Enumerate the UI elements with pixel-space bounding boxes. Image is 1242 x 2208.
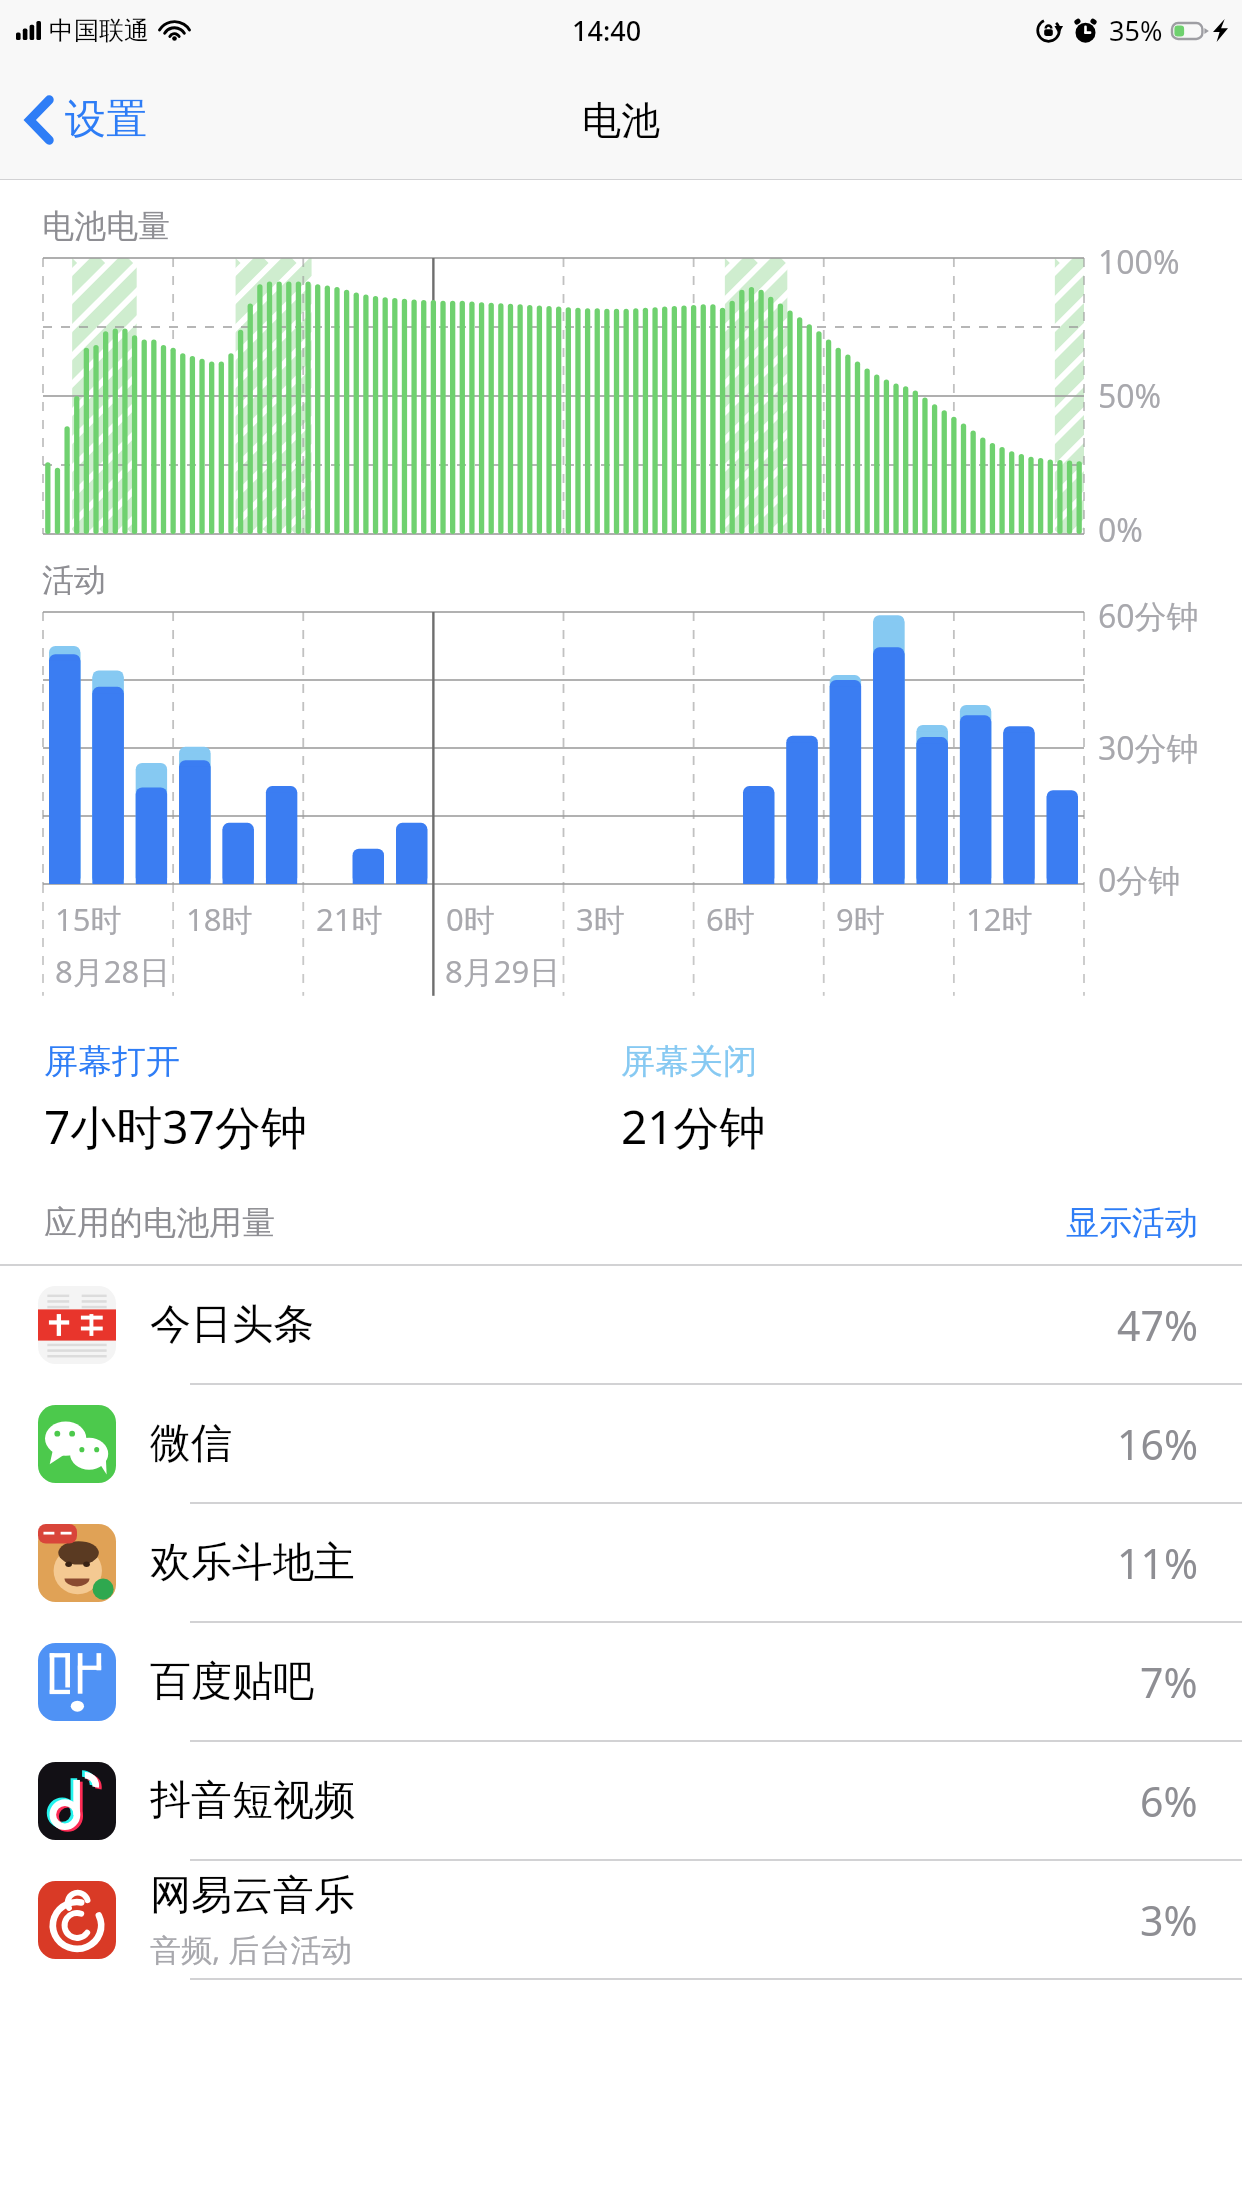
staticText: 0% (1098, 508, 1143, 552)
staticText: 微信 (150, 1418, 232, 1470)
staticText: 屏幕关闭 (621, 1040, 757, 1083)
staticText: 音频, 后台活动 (150, 1928, 353, 1970)
staticText: 18时 (186, 898, 253, 940)
staticText: 电池电量 (42, 206, 170, 246)
staticText: 应用的电池用量 (44, 1202, 275, 1244)
staticText: 今日头条 (150, 1299, 314, 1351)
button[interactable]: 百度贴吧 (0, 1623, 1242, 1740)
staticText: 30分钟 (1098, 726, 1199, 770)
staticText: 14:40 (572, 12, 642, 49)
other: 返回 (26, 96, 53, 144)
button[interactable]: 欢乐斗地主 (0, 1504, 1242, 1621)
staticText: 60分钟 (1098, 594, 1199, 638)
staticText: 中国联通 (49, 15, 149, 46)
staticText: 15时 (55, 898, 122, 940)
staticText: 显示活动 (1066, 1202, 1198, 1244)
staticText: 百度贴吧 (150, 1656, 314, 1708)
staticText: 16% (1117, 1416, 1198, 1472)
staticText: 3% (1140, 1892, 1198, 1948)
staticText: 47% (1117, 1297, 1198, 1353)
staticText: 8月28日 (55, 950, 171, 992)
staticText: 设置 (65, 94, 147, 146)
button[interactable]: 显示活动 (1066, 1202, 1198, 1244)
staticText: 7小时37分钟 (44, 1095, 307, 1158)
staticText: 12时 (966, 898, 1033, 940)
button[interactable]: 微信 (0, 1385, 1242, 1502)
staticText: 欢乐斗地主 (150, 1537, 355, 1589)
button[interactable]: 屏幕关闭 (621, 1040, 1198, 1158)
staticText: 网易云音乐 (150, 1870, 355, 1922)
staticText: 8月29日 (445, 950, 561, 992)
staticText: 35% (1109, 12, 1163, 49)
staticText: 电池 (582, 96, 660, 145)
staticText: 9时 (836, 898, 885, 940)
button[interactable]: 网易云音乐 (0, 1861, 1242, 1978)
button[interactable]: 今日头条 (0, 1266, 1242, 1383)
button[interactable]: 屏幕打开 (44, 1040, 621, 1158)
staticText: 0分钟 (1098, 858, 1181, 902)
staticText: 11% (1117, 1535, 1198, 1591)
staticText: 抖音短视频 (150, 1775, 355, 1827)
staticText: 21时 (316, 898, 383, 940)
staticText: 50% (1098, 374, 1162, 418)
staticText: 6% (1140, 1773, 1198, 1829)
staticText: 6时 (706, 898, 755, 940)
staticText: 7% (1140, 1654, 1198, 1710)
button[interactable]: 返回 (20, 84, 153, 156)
staticText: 屏幕打开 (44, 1040, 180, 1083)
staticText: 0时 (446, 898, 495, 940)
staticText: 活动 (42, 560, 106, 600)
staticText: 100% (1098, 240, 1180, 284)
staticText: 3时 (576, 898, 625, 940)
staticText: 21分钟 (621, 1095, 766, 1158)
button[interactable]: 抖音短视频 (0, 1742, 1242, 1859)
